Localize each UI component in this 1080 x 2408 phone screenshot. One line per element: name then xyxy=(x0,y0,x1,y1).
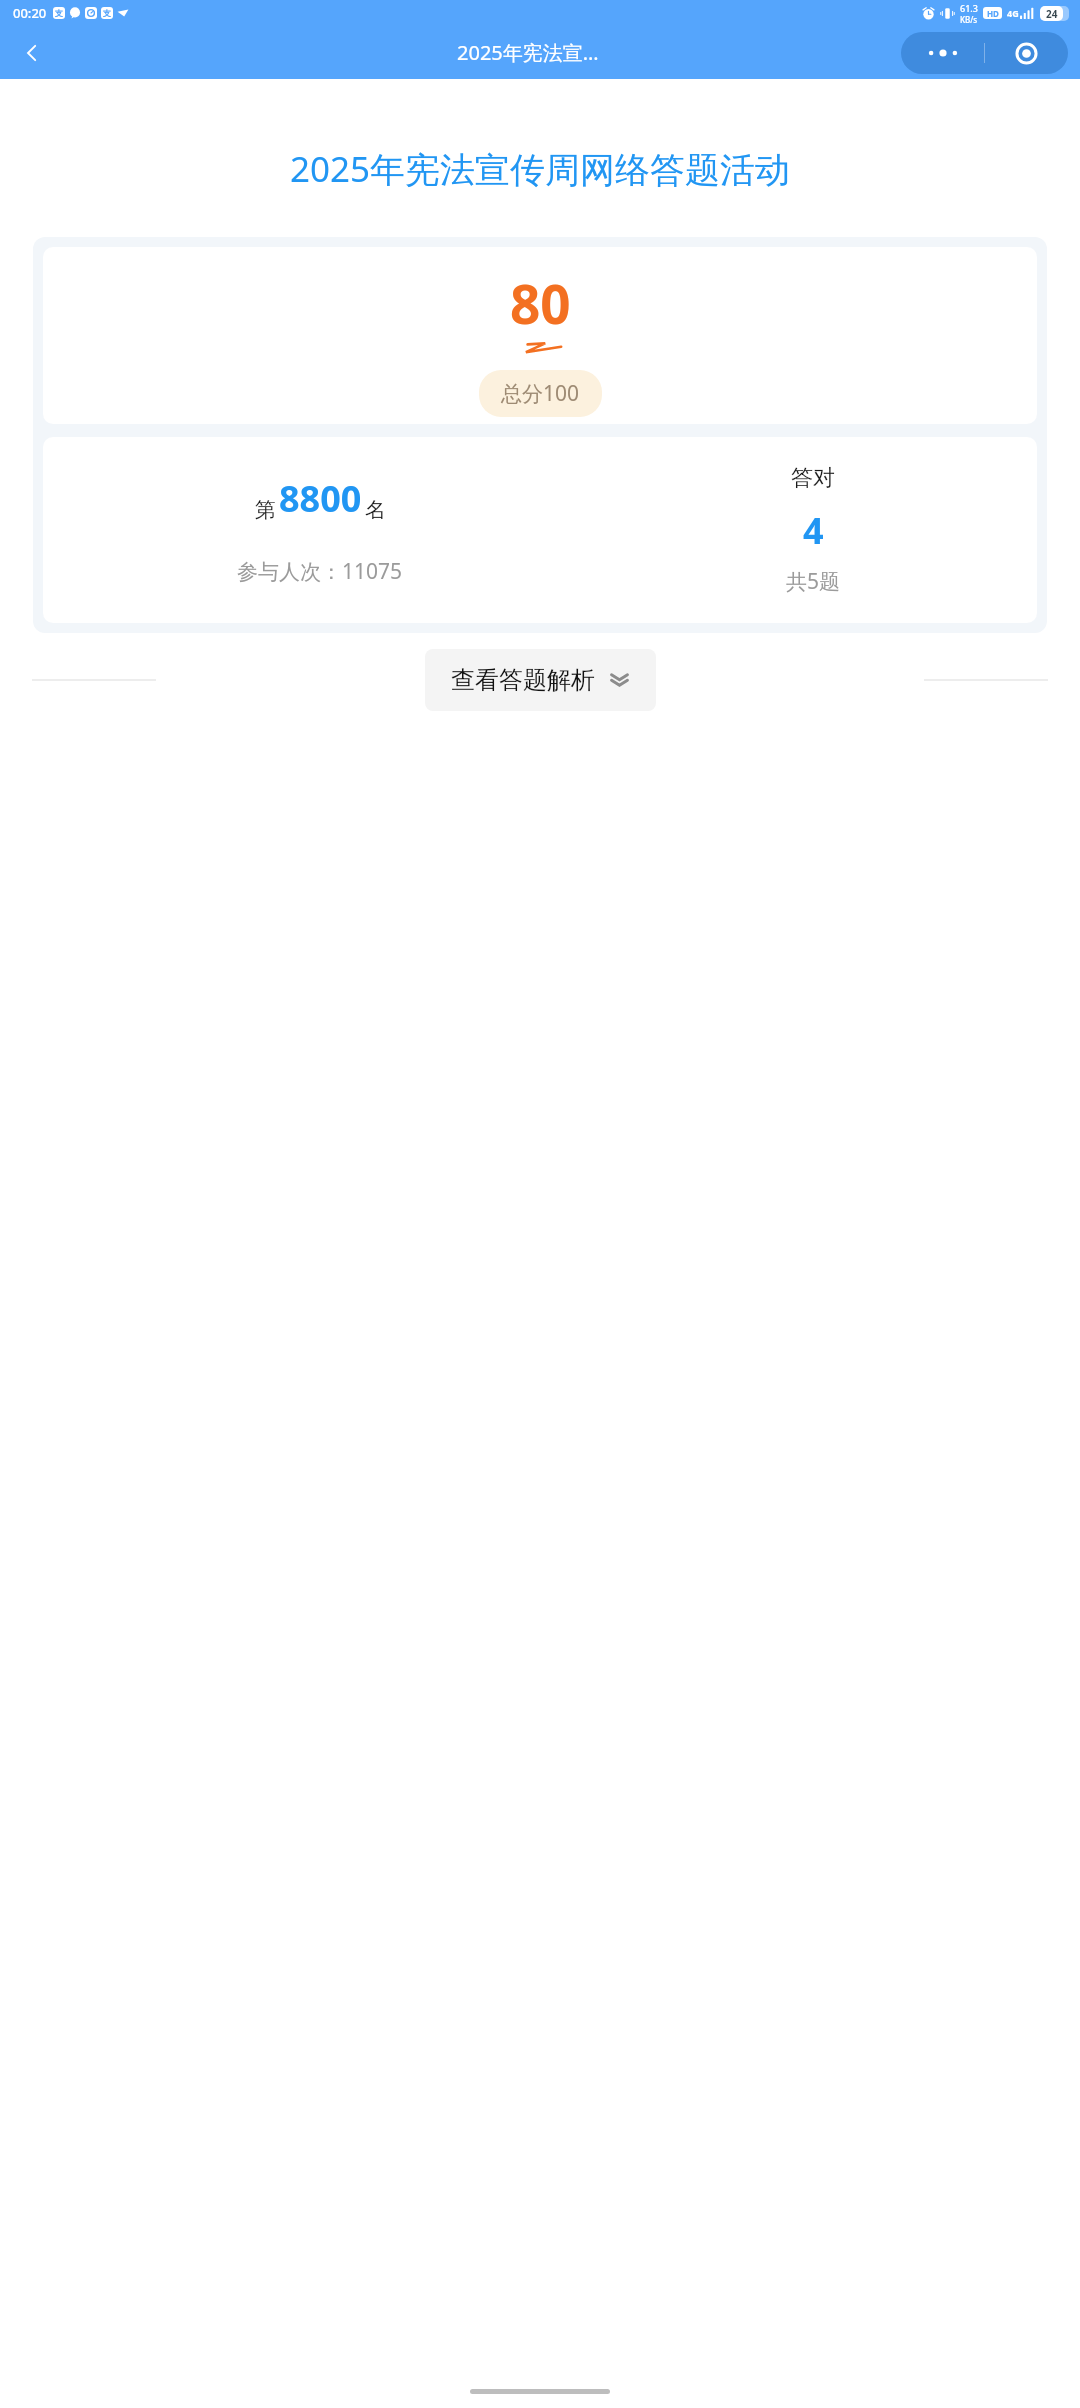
other: Close xyxy=(985,32,1068,74)
staticText: 答对 xyxy=(791,464,835,492)
staticText: 24 xyxy=(1046,7,1058,21)
staticText: 2025年宪法宣… xyxy=(457,39,599,66)
staticText: 4 xyxy=(803,506,824,555)
staticText: 80 xyxy=(510,267,571,339)
staticText: 61.3 xyxy=(960,2,978,14)
staticText: 名 xyxy=(365,497,386,523)
staticText: HD xyxy=(987,8,999,19)
staticText: KB/s xyxy=(960,14,978,25)
staticText: 第 xyxy=(255,497,276,523)
staticText: 共5题 xyxy=(786,567,841,596)
other: More xyxy=(901,32,984,74)
staticText: 支 xyxy=(103,8,111,18)
staticText: 00:20 xyxy=(13,4,47,22)
staticText: 8800 xyxy=(279,474,362,523)
button[interactable]: 查看答题解析 xyxy=(451,665,630,695)
staticText: 查看答题解析 xyxy=(451,665,595,695)
staticText: 4G xyxy=(1007,7,1019,19)
button[interactable]: Back xyxy=(10,31,54,75)
staticText: 参与人次：11075 xyxy=(237,557,403,586)
staticText: 支 xyxy=(55,8,63,18)
staticText: 2025年宪法宣传周网络答题活动 xyxy=(40,145,1040,193)
button[interactable]: More xyxy=(901,32,1068,74)
staticText: 总分100 xyxy=(501,379,580,408)
